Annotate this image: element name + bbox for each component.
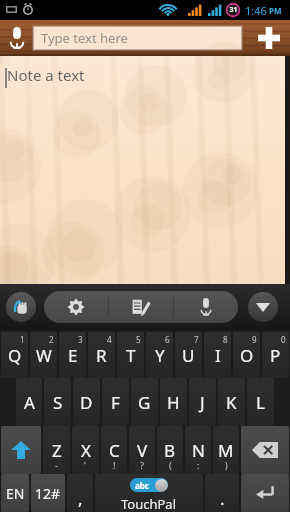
button[interactable]: E <box>59 332 86 378</box>
staticText: 4 <box>107 334 112 345</box>
button[interactable]: M <box>213 426 239 474</box>
button[interactable]: S <box>44 378 71 426</box>
button[interactable]: J <box>189 378 216 426</box>
button[interactable]: abc <box>130 478 168 492</box>
button[interactable]: Swipe input <box>6 292 36 322</box>
staticText: T <box>126 344 136 367</box>
staticText: W <box>36 344 52 367</box>
button[interactable]: C <box>101 426 127 474</box>
button[interactable]: EN <box>1 474 29 512</box>
button[interactable]: Type text here <box>33 26 242 50</box>
button[interactable]: Settings <box>44 291 108 323</box>
button[interactable]: N <box>185 426 211 474</box>
staticText: E <box>68 344 78 367</box>
button[interactable]: Backspace <box>241 426 289 474</box>
button[interactable]: P <box>262 332 289 378</box>
staticText: : <box>197 459 200 471</box>
button[interactable]: Add <box>248 20 290 56</box>
staticText: 1:46 <box>245 3 267 18</box>
button[interactable]: Y <box>146 332 173 378</box>
button[interactable]: Edit note <box>109 291 173 323</box>
staticText: 31 <box>227 5 240 15</box>
staticText: L <box>256 391 265 414</box>
button[interactable]: Enter <box>241 474 289 512</box>
staticText: , <box>78 487 83 510</box>
staticText: X <box>81 439 91 462</box>
staticText: C <box>109 439 120 462</box>
staticText: G <box>138 391 151 414</box>
button[interactable]: Voice input <box>2 20 32 56</box>
button[interactable]: O <box>233 332 260 378</box>
button[interactable]: . <box>205 474 239 512</box>
staticText: V <box>137 439 148 462</box>
button[interactable]: R <box>88 332 115 378</box>
staticText: J <box>200 391 205 414</box>
staticText: F <box>111 391 120 414</box>
button[interactable]: abc <box>95 474 203 512</box>
staticText: ! <box>113 459 116 471</box>
staticText: M <box>218 439 234 462</box>
staticText: N <box>192 439 205 462</box>
staticText: - <box>55 459 58 471</box>
staticText: 0 <box>281 334 286 345</box>
staticText: P <box>270 344 281 367</box>
staticText: K <box>226 391 237 414</box>
button[interactable]: X <box>72 426 99 474</box>
staticText: Z <box>52 439 62 462</box>
staticText: ' <box>84 459 87 471</box>
button[interactable]: Z <box>43 426 70 474</box>
button[interactable]: W <box>30 332 57 378</box>
staticText: 5 <box>136 334 141 345</box>
button[interactable]: F <box>102 378 129 426</box>
staticText: TouchPal <box>121 495 177 512</box>
staticText: ? <box>140 459 144 471</box>
staticText: 1 <box>20 334 25 345</box>
button[interactable]: D <box>73 378 100 426</box>
staticText: 3 <box>78 334 83 345</box>
staticText: ) <box>225 459 228 471</box>
button[interactable]: 12# <box>31 474 65 512</box>
button[interactable]: A <box>16 378 42 426</box>
staticText: I <box>215 344 221 367</box>
button[interactable]: H <box>160 378 187 426</box>
staticText: B <box>164 439 176 462</box>
staticText: Y <box>155 344 165 367</box>
button[interactable]: V <box>129 426 155 474</box>
staticText: 6 <box>165 334 170 345</box>
staticText: A <box>24 391 35 414</box>
button[interactable]: Hide keyboard <box>248 292 278 322</box>
staticText: 12# <box>35 484 61 503</box>
staticText: U <box>182 344 195 367</box>
staticText: 8 <box>223 334 228 345</box>
staticText: Note a text <box>7 65 85 85</box>
staticText: ( <box>169 459 172 471</box>
staticText: abc <box>135 480 149 491</box>
button[interactable]: U <box>175 332 202 378</box>
button[interactable]: , <box>67 474 93 512</box>
staticText: EN <box>6 484 25 503</box>
staticText: O <box>240 344 254 367</box>
button[interactable]: K <box>218 378 245 426</box>
button[interactable]: I <box>204 332 231 378</box>
button[interactable]: T <box>117 332 144 378</box>
button[interactable]: B <box>157 426 183 474</box>
staticText: Q <box>8 344 22 367</box>
button[interactable]: G <box>131 378 158 426</box>
staticText: 2 <box>49 334 54 345</box>
button[interactable]: Voice typing <box>174 291 238 323</box>
button[interactable]: Shift <box>1 426 41 474</box>
staticText: . <box>220 487 225 510</box>
staticText: H <box>167 391 180 414</box>
button[interactable]: Note a text <box>0 56 285 284</box>
staticText: 7 <box>194 334 199 345</box>
staticText: 9 <box>252 334 257 345</box>
staticText: PM <box>269 5 282 16</box>
button[interactable]: Q <box>1 332 28 378</box>
staticText: R <box>96 344 107 367</box>
staticText: S <box>53 391 63 414</box>
staticText: Type text here <box>41 29 128 47</box>
staticText: D <box>80 391 93 414</box>
button[interactable]: L <box>247 378 274 426</box>
